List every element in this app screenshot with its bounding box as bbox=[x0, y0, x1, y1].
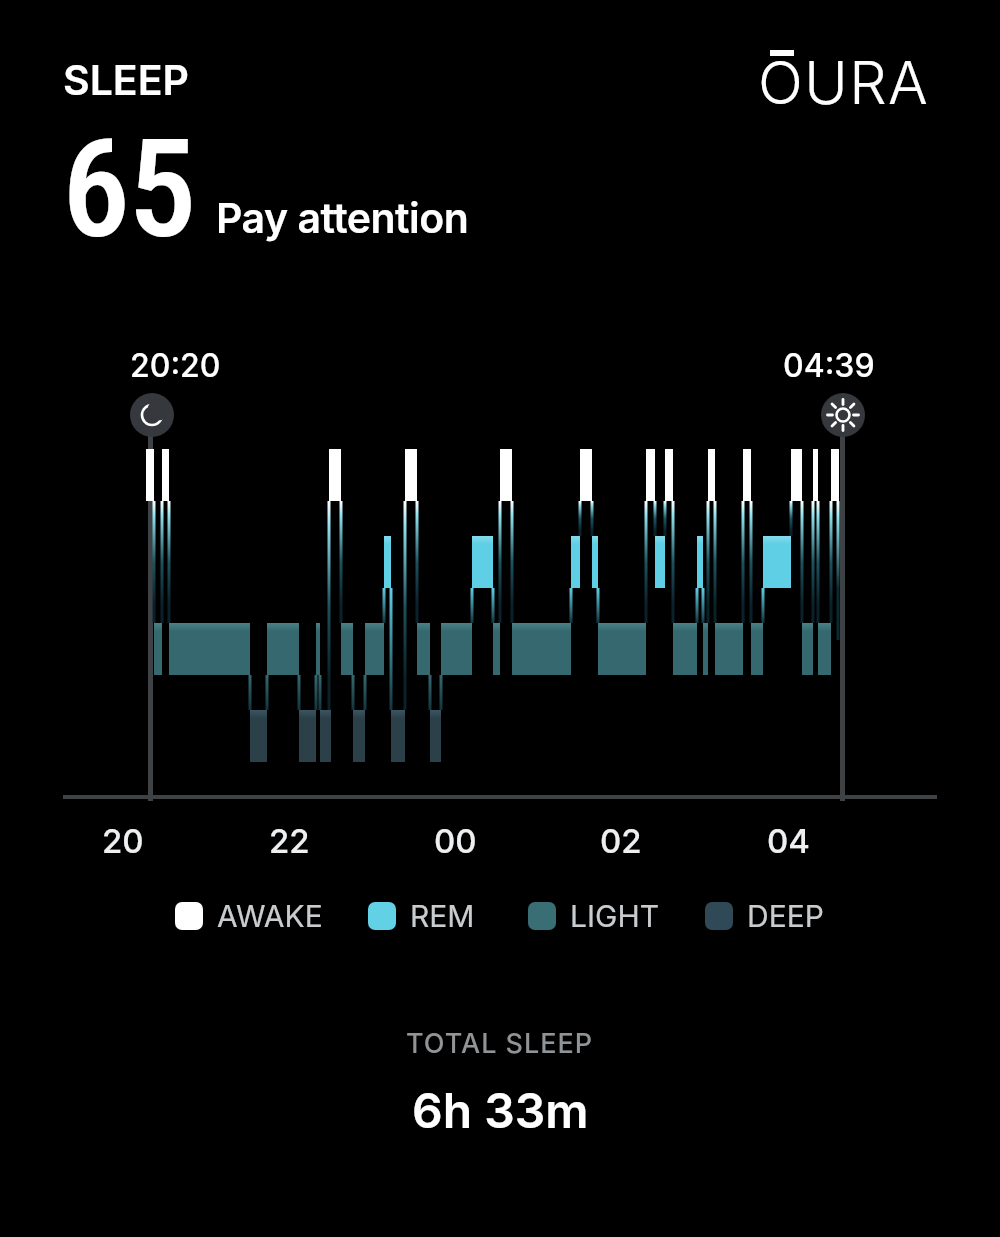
staticText: 6h 33m bbox=[412, 1081, 589, 1139]
staticText: 04 bbox=[767, 821, 810, 861]
staticText: 22 bbox=[269, 821, 310, 861]
staticText: Pay attention bbox=[216, 193, 469, 243]
staticText: 02 bbox=[600, 821, 642, 861]
staticText: TOTAL SLEEP bbox=[406, 1027, 594, 1060]
button[interactable]: AWAKE bbox=[175, 898, 323, 934]
staticText: LIGHT bbox=[570, 898, 660, 934]
staticText: SLEEP bbox=[63, 55, 189, 105]
staticText: DEEP bbox=[747, 898, 824, 934]
staticText: 00 bbox=[434, 821, 477, 861]
staticText: 20:20 bbox=[130, 346, 221, 385]
staticText: AWAKE bbox=[217, 898, 323, 934]
staticText: OURA bbox=[758, 47, 930, 118]
staticText: 04:39 bbox=[783, 346, 875, 385]
staticText: 20 bbox=[102, 821, 144, 861]
button[interactable]: DEEP bbox=[705, 898, 824, 934]
staticText: 65 bbox=[62, 110, 195, 269]
button[interactable]: REM bbox=[368, 898, 475, 934]
staticText: REM bbox=[410, 898, 475, 934]
button[interactable]: LIGHT bbox=[528, 898, 660, 934]
